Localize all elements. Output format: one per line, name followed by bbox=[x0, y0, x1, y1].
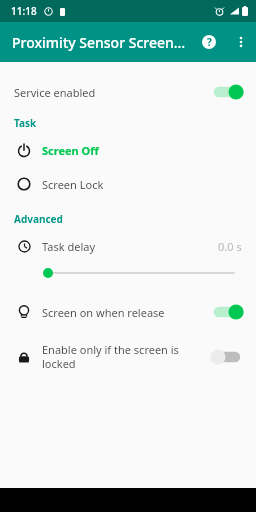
other: Screen on when release bbox=[16, 304, 32, 320]
other: Screen Off bbox=[16, 142, 32, 158]
staticText: 11:18 bbox=[11, 4, 37, 18]
button[interactable]: Off bbox=[210, 347, 244, 367]
staticText: Screen Lock bbox=[42, 177, 104, 192]
staticText: Service enabled bbox=[14, 85, 96, 100]
button[interactable]: More options bbox=[226, 27, 256, 57]
button[interactable]: Screen Lock bbox=[0, 170, 256, 198]
button[interactable]: Task delay bbox=[0, 232, 256, 260]
staticText: Advanced bbox=[14, 212, 63, 226]
other: Task delay bbox=[16, 238, 32, 254]
button[interactable]: Enable only if screen locked bbox=[0, 336, 256, 377]
staticText: Screen on when release bbox=[42, 305, 165, 320]
button[interactable]: Help bbox=[192, 25, 226, 59]
staticText: Task delay bbox=[42, 239, 95, 254]
staticText: Task bbox=[14, 116, 37, 130]
staticText: Proximity Sensor Screen… bbox=[12, 33, 186, 52]
other: Screen Lock bbox=[16, 176, 32, 192]
other: Enable only if screen locked bbox=[16, 349, 32, 365]
button[interactable]: On bbox=[210, 302, 244, 322]
staticText: Enable only if the screen is locked bbox=[42, 342, 202, 371]
staticText: ? bbox=[207, 35, 212, 49]
staticText: 0.0 s bbox=[218, 239, 242, 254]
button[interactable]: Screen Off bbox=[0, 136, 256, 164]
button[interactable]: Screen on when release bbox=[0, 296, 256, 328]
button[interactable]: Task delay slider bbox=[0, 260, 256, 286]
staticText: Screen Off bbox=[42, 143, 99, 158]
button[interactable]: On bbox=[210, 82, 244, 102]
button[interactable]: Service enabled bbox=[0, 76, 256, 108]
